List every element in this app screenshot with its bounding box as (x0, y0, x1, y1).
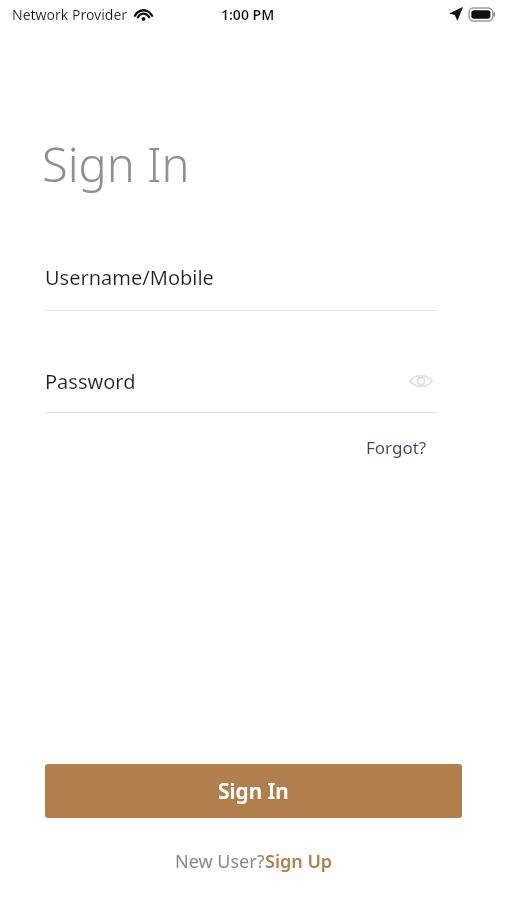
button[interactable]: Forgot? (361, 432, 432, 463)
button[interactable]: Sign In (45, 764, 462, 818)
button[interactable]: Password (45, 368, 437, 412)
button[interactable]: Username/Mobile (45, 264, 437, 311)
staticText: Forgot? (366, 436, 427, 459)
staticText: Network Provider (12, 5, 128, 24)
button[interactable]: New User? (169, 845, 339, 878)
staticText: New User? (175, 849, 265, 874)
staticText: Username/Mobile (45, 264, 214, 291)
staticText: Password (45, 368, 136, 395)
button[interactable]: Show password (405, 365, 437, 397)
staticText: Sign In (218, 777, 289, 806)
staticText: Sign In (42, 132, 190, 196)
staticText: 1:00 PM (221, 5, 275, 24)
staticText: Sign Up (265, 849, 333, 874)
